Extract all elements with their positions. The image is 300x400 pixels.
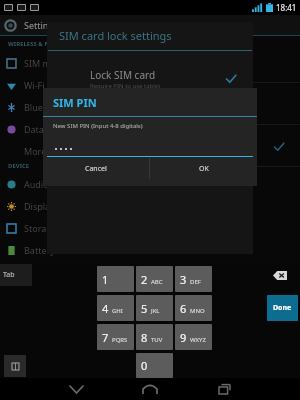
staticText: SIM PIN xyxy=(53,95,97,110)
staticText: MNO xyxy=(190,307,205,315)
button[interactable]: Lock SIM card xyxy=(47,64,253,94)
button[interactable]: Recent apps xyxy=(204,378,244,400)
staticText: 3 xyxy=(180,272,187,287)
staticText: SIM management xyxy=(24,57,100,69)
staticText: New SIM PIN (Input 4-8 digitals) xyxy=(53,122,143,130)
button[interactable]: Cancel xyxy=(43,158,149,179)
staticText: 6 xyxy=(180,301,187,316)
staticText: Audio profiles xyxy=(24,178,83,190)
staticText: Battery xyxy=(24,244,55,256)
staticText: Require PIN to use tablet xyxy=(90,82,161,90)
staticText: GHI xyxy=(112,307,123,315)
button[interactable]: Tab xyxy=(0,264,32,286)
staticText: DEF xyxy=(190,278,201,286)
button[interactable]: Storage xyxy=(0,217,128,239)
staticText: ABC xyxy=(151,278,163,286)
staticText: 5 xyxy=(141,301,148,316)
staticText: OK xyxy=(199,164,209,174)
staticText: Apps xyxy=(24,266,46,278)
button[interactable]: 8 xyxy=(136,324,173,350)
button[interactable]: SIM management xyxy=(0,52,128,74)
button[interactable]: Apps xyxy=(0,261,128,283)
button[interactable]: 5 xyxy=(136,295,173,321)
button[interactable]: Home xyxy=(130,378,170,400)
button[interactable]: Wi-Fi xyxy=(0,74,128,96)
button[interactable]: Battery xyxy=(0,239,128,261)
staticText: Make passwords visible xyxy=(134,141,274,152)
button[interactable]: Switch input method xyxy=(4,355,26,377)
staticText: Settings xyxy=(24,19,59,31)
staticText: SIM card lock settings xyxy=(59,28,172,43)
staticText: Lock SIM card xyxy=(90,68,156,82)
staticText: 2 xyxy=(141,272,148,287)
staticText: DEVICE xyxy=(8,162,30,170)
staticText: Device administrators xyxy=(134,177,227,189)
staticText: 8 xyxy=(141,330,148,345)
staticText: WXYZ xyxy=(190,336,206,344)
button[interactable]: 6 xyxy=(175,295,212,321)
button[interactable]: 7 xyxy=(97,324,134,350)
staticText: Done xyxy=(273,303,292,313)
staticText: Storage xyxy=(24,222,57,234)
button[interactable]: Data usage xyxy=(0,118,128,140)
staticText: PQRS xyxy=(112,336,128,344)
staticText: More... xyxy=(24,145,54,157)
staticText: 18:41 xyxy=(276,2,297,13)
button[interactable]: Settings xyxy=(0,15,300,35)
staticText: Display xyxy=(24,200,55,212)
staticText: 1 xyxy=(102,272,109,287)
staticText: WIRELESS & NETWORKS xyxy=(8,40,78,48)
button[interactable]: Backspace xyxy=(266,265,294,285)
staticText: 9 xyxy=(180,330,187,345)
button[interactable]: 3 xyxy=(175,266,212,292)
staticText: TUV xyxy=(151,336,163,344)
staticText: JKL xyxy=(151,307,160,315)
staticText: Tab xyxy=(3,270,15,280)
button[interactable]: 0 xyxy=(136,353,173,378)
staticText: 7 xyxy=(102,330,109,345)
button[interactable]: Display xyxy=(0,195,128,217)
button[interactable]: Done xyxy=(267,295,298,321)
staticText: 4 xyxy=(102,301,109,316)
button[interactable]: 9 xyxy=(175,324,212,350)
staticText: Data usage xyxy=(24,123,72,135)
staticText: 0 xyxy=(141,358,148,373)
button[interactable]: Hide keyboard xyxy=(56,378,96,400)
button[interactable]: Bluetooth xyxy=(0,96,128,118)
button[interactable]: OK xyxy=(150,158,257,179)
button[interactable]: 2 xyxy=(136,266,173,292)
button[interactable]: 4 xyxy=(97,295,134,321)
staticText: Bluetooth xyxy=(24,101,66,113)
staticText: Wi-Fi xyxy=(24,79,45,91)
button[interactable]: 1 xyxy=(97,266,134,292)
staticText: Cancel xyxy=(85,164,107,174)
button[interactable]: More... xyxy=(0,140,128,162)
button[interactable]: Audio profiles xyxy=(0,173,128,195)
